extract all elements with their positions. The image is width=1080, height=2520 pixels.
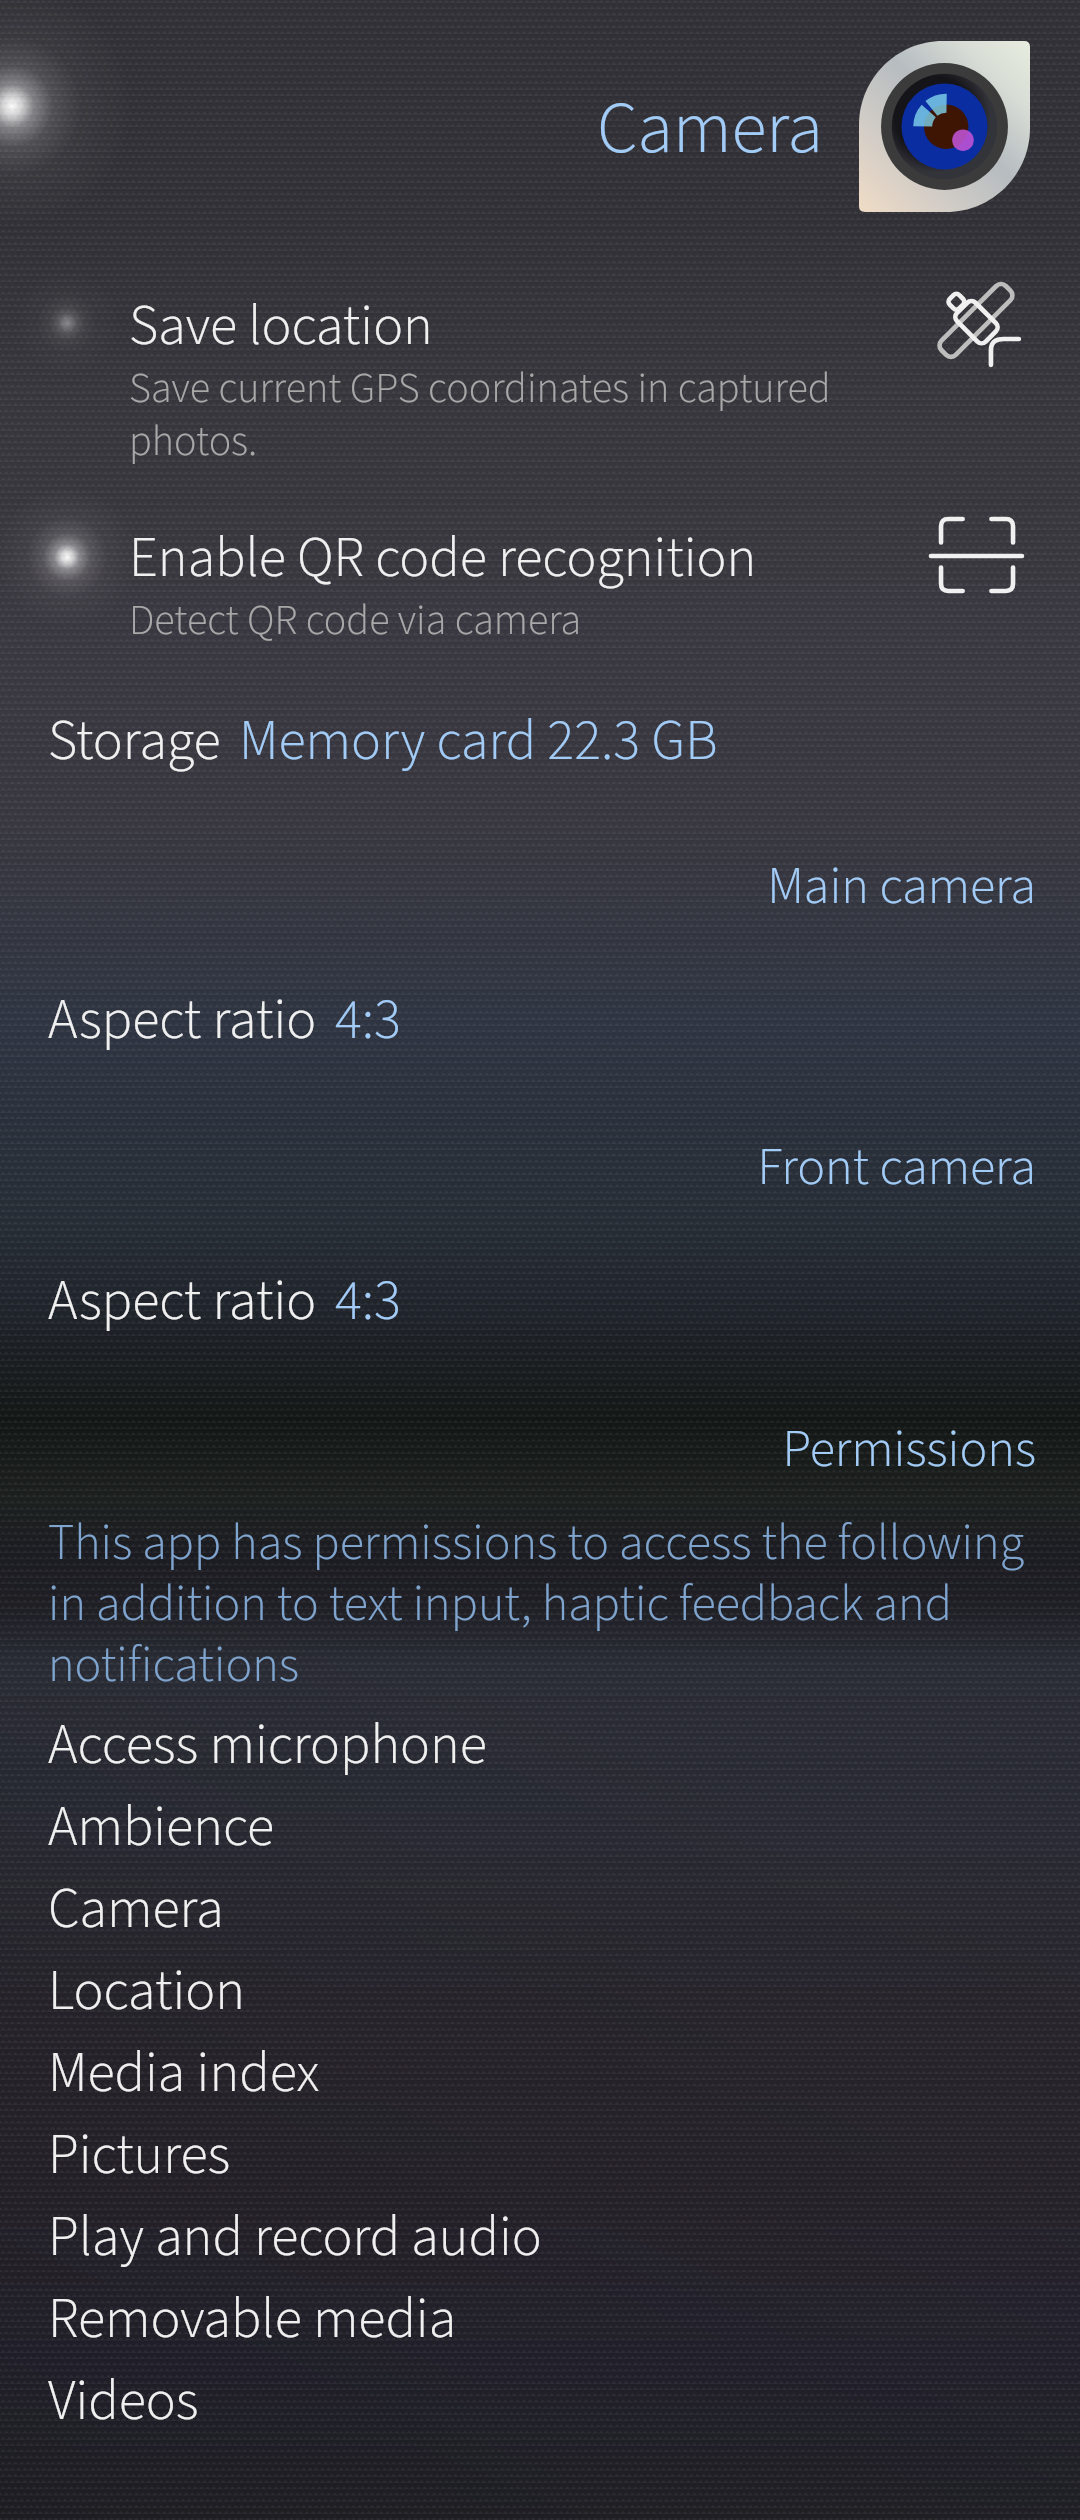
staticText: Camera — [597, 78, 823, 178]
staticText: Removable media — [48, 2280, 457, 2360]
staticText: Front camera — [0, 1131, 1036, 1205]
staticText: Main camera — [0, 850, 1036, 924]
staticText: Ambience — [48, 1788, 275, 1868]
staticText: Location — [48, 1952, 246, 2032]
staticText: This app has permissions to access the f… — [48, 1508, 1056, 1701]
button[interactable]: Videos — [48, 2362, 948, 2444]
staticText: Videos — [48, 2362, 199, 2442]
staticText: Access microphone — [48, 1706, 487, 1786]
staticText: Pictures — [48, 2116, 231, 2196]
staticText: Enable QR code recognition — [129, 519, 757, 599]
button[interactable]: Media index — [48, 2034, 948, 2116]
staticText: Play and record audio — [48, 2198, 542, 2278]
button[interactable]: Access microphone — [48, 1706, 948, 1788]
staticText: Storage — [48, 702, 221, 782]
staticText: Detect QR code via camera — [129, 591, 582, 651]
button[interactable]: Camera — [859, 41, 1030, 212]
other: Enable QR code recognition — [930, 512, 1026, 608]
button[interactable]: Enable QR code recognition — [0, 505, 900, 660]
button[interactable]: Aspect ratio — [48, 1262, 548, 1348]
staticText: Aspect ratio — [48, 1262, 317, 1342]
button[interactable]: Pictures — [48, 2116, 948, 2198]
button[interactable]: Camera — [48, 1870, 948, 1952]
other: Camera — [859, 41, 1030, 212]
staticText: Permissions — [0, 1413, 1036, 1487]
button[interactable]: Play and record audio — [48, 2198, 948, 2280]
button[interactable]: Camera — [597, 78, 837, 178]
other: Save location — [932, 278, 1022, 368]
staticText: Save location — [129, 287, 433, 367]
button[interactable]: Removable media — [48, 2280, 948, 2362]
button[interactable]: Ambience — [48, 1788, 948, 1870]
staticText: Camera — [48, 1870, 224, 1950]
staticText: 4:3 — [335, 1262, 401, 1342]
button[interactable]: Storage — [48, 702, 808, 788]
button[interactable]: Location — [48, 1952, 948, 2034]
button[interactable]: Save location — [0, 270, 900, 490]
staticText: Aspect ratio — [48, 981, 317, 1061]
button[interactable]: Aspect ratio — [48, 981, 548, 1067]
staticText: Media index — [48, 2034, 320, 2114]
staticText: Memory card 22.3 GB — [239, 702, 718, 782]
staticText: 4:3 — [335, 981, 401, 1061]
staticText: Save current GPS coordinates in captured… — [129, 359, 841, 472]
